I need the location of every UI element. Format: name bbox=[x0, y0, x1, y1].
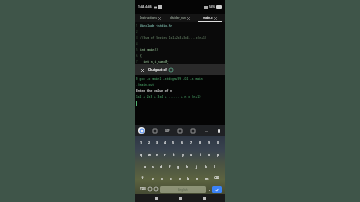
button[interactable]: t bbox=[169, 148, 178, 160]
button[interactable]: 4 bbox=[161, 136, 169, 148]
button[interactable]: Home bbox=[177, 195, 183, 201]
button[interactable]: q bbox=[137, 148, 145, 160]
staticText: GIF bbox=[165, 129, 170, 133]
button[interactable]: Shift bbox=[137, 172, 148, 184]
button[interactable]: Instructions bbox=[135, 14, 165, 22]
button[interactable]: y bbox=[178, 148, 187, 160]
staticText: Instructions bbox=[140, 16, 157, 20]
staticText: 54% bbox=[209, 5, 215, 9]
button[interactable]: g bbox=[174, 160, 183, 172]
button[interactable]: d bbox=[157, 160, 165, 172]
button[interactable]: v bbox=[175, 172, 184, 184]
button[interactable]: divider_run bbox=[165, 14, 195, 22]
button[interactable]: ?123 bbox=[138, 184, 147, 194]
staticText: 6 bbox=[181, 140, 184, 145]
staticText: main.c bbox=[203, 16, 213, 20]
staticText: o bbox=[208, 152, 211, 157]
staticText: b bbox=[187, 176, 190, 181]
staticText: 7 bbox=[190, 140, 193, 145]
staticText: Enter the value of n bbox=[136, 89, 173, 93]
staticText: 7 bbox=[136, 60, 138, 64]
button[interactable]: i bbox=[196, 148, 205, 160]
button[interactable]: b bbox=[184, 172, 193, 184]
button[interactable]: 0 bbox=[214, 136, 223, 148]
staticText: k bbox=[205, 164, 207, 169]
button[interactable]: e bbox=[153, 148, 161, 160]
button[interactable]: Backspace bbox=[211, 172, 223, 184]
button[interactable]: Voice input bbox=[216, 128, 222, 134]
staticText: 0 bbox=[217, 140, 220, 145]
button[interactable]: c bbox=[166, 172, 175, 184]
staticText: 1 bbox=[136, 24, 138, 28]
staticText: t bbox=[173, 152, 175, 157]
staticText: i bbox=[200, 152, 201, 157]
button[interactable]: Close output bbox=[139, 67, 145, 73]
staticText: 1x2 + 2x3 + 3x4 + ...... + n x (n+1) bbox=[136, 95, 201, 99]
staticText: 3 bbox=[136, 36, 138, 40]
staticText: #include <stdio.h> bbox=[140, 24, 173, 28]
button[interactable]: n bbox=[193, 172, 202, 184]
button[interactable]: . bbox=[207, 184, 212, 194]
button[interactable]: o bbox=[205, 148, 214, 160]
staticText: 4 bbox=[136, 42, 138, 46]
button[interactable]: p bbox=[214, 148, 223, 160]
staticText: 5 bbox=[172, 140, 175, 145]
button[interactable]: k bbox=[201, 160, 210, 172]
button[interactable]: 6 bbox=[178, 136, 187, 148]
button[interactable]: Recents bbox=[201, 195, 207, 201]
button[interactable]: 5 bbox=[169, 136, 178, 148]
staticText: f bbox=[169, 164, 171, 169]
button[interactable]: z bbox=[148, 172, 157, 184]
staticText: ⇧ bbox=[141, 176, 145, 180]
button[interactable]: f bbox=[165, 160, 174, 172]
button[interactable]: Google bbox=[138, 127, 145, 134]
staticText: //Sum of Series 1x2+2x3+3x4....x(n+1) bbox=[140, 36, 207, 40]
button[interactable]: 8 bbox=[196, 136, 205, 148]
button[interactable]: Refresh bbox=[169, 68, 173, 72]
button[interactable]: x bbox=[157, 172, 166, 184]
staticText: x bbox=[161, 176, 163, 181]
staticText: . bbox=[209, 187, 210, 192]
staticText: ?123 bbox=[140, 187, 146, 191]
button[interactable]: l bbox=[210, 160, 219, 172]
staticText: g bbox=[177, 164, 180, 169]
staticText: ./main.out bbox=[136, 83, 155, 87]
staticText: c bbox=[170, 176, 172, 181]
staticText: a bbox=[144, 164, 147, 169]
button[interactable]: m bbox=[202, 172, 211, 184]
button[interactable]: main.c bbox=[195, 14, 225, 22]
staticText: e bbox=[156, 152, 159, 157]
staticText: v bbox=[179, 176, 181, 181]
staticText: 1:44 4:46 bbox=[138, 5, 152, 9]
button[interactable]: Clipboard bbox=[152, 128, 158, 134]
button[interactable]: Settings bbox=[177, 128, 183, 134]
staticText: English bbox=[178, 188, 188, 192]
button[interactable]: Theme bbox=[153, 184, 159, 194]
button[interactable]: Translate bbox=[190, 128, 196, 134]
staticText: divider_run bbox=[170, 16, 186, 20]
button[interactable]: Back bbox=[153, 195, 159, 201]
button[interactable]: Emoji bbox=[147, 184, 153, 194]
staticText: n bbox=[196, 176, 199, 181]
button[interactable]: 3 bbox=[153, 136, 161, 148]
button[interactable]: 7 bbox=[187, 136, 196, 148]
staticText: $ gcc -o main1 -std=gnu99 -O2 -s main bbox=[136, 77, 203, 81]
button[interactable]: s bbox=[149, 160, 157, 172]
button[interactable]: w bbox=[145, 148, 153, 160]
button[interactable]: 1 bbox=[137, 136, 145, 148]
button[interactable]: j bbox=[192, 160, 201, 172]
button[interactable]: r bbox=[161, 148, 169, 160]
button[interactable]: 9 bbox=[205, 136, 214, 148]
button[interactable]: u bbox=[187, 148, 196, 160]
staticText: Output c! bbox=[148, 67, 167, 73]
button[interactable]: GIF bbox=[165, 129, 170, 133]
button[interactable]: h bbox=[183, 160, 192, 172]
button[interactable]: More bbox=[203, 129, 209, 133]
staticText: 2 bbox=[148, 140, 151, 145]
button[interactable]: English bbox=[160, 186, 206, 193]
button[interactable]: Enter bbox=[212, 186, 222, 193]
staticText: 6 bbox=[136, 54, 138, 58]
staticText: d bbox=[160, 164, 163, 169]
button[interactable]: 2 bbox=[145, 136, 153, 148]
button[interactable]: a bbox=[141, 160, 149, 172]
